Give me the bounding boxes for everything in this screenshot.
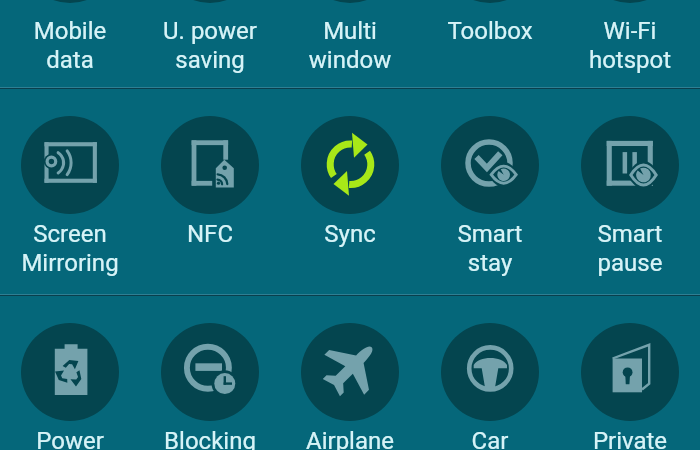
staticText: Power saving bbox=[0, 427, 140, 450]
button[interactable]: Blocking mode bbox=[140, 296, 280, 450]
button[interactable]: Car mode bbox=[420, 296, 560, 450]
staticText: NFC bbox=[140, 220, 280, 248]
button[interactable]: Screen Mirroring bbox=[0, 89, 140, 296]
staticText: Wi-Fi hotspot bbox=[560, 17, 700, 74]
staticText: Car mode bbox=[420, 427, 560, 450]
button[interactable]: Wi-Fi hotspot bbox=[560, 0, 700, 89]
button[interactable]: Private mode bbox=[560, 296, 700, 450]
staticText: Screen Mirroring bbox=[0, 220, 140, 277]
button[interactable]: Toolbox bbox=[420, 0, 560, 89]
button[interactable]: Airplane mode bbox=[280, 296, 420, 450]
button[interactable]: Smart pause bbox=[560, 89, 700, 296]
staticText: Smart stay bbox=[420, 220, 560, 277]
button[interactable]: Sync bbox=[280, 89, 420, 296]
button[interactable]: U. power saving bbox=[140, 0, 280, 89]
button[interactable]: NFC bbox=[140, 89, 280, 296]
button[interactable]: Mobile data bbox=[0, 0, 140, 89]
button[interactable]: Multi window bbox=[280, 0, 420, 89]
button[interactable]: Power saving bbox=[0, 296, 140, 450]
staticText: Blocking mode bbox=[140, 427, 280, 450]
staticText: U. power saving bbox=[140, 17, 280, 74]
staticText: Smart pause bbox=[560, 220, 700, 277]
staticText: Multi window bbox=[280, 17, 420, 74]
staticText: Private mode bbox=[560, 427, 700, 450]
staticText: Toolbox bbox=[420, 17, 560, 45]
button[interactable]: Smart stay bbox=[420, 89, 560, 296]
staticText: Mobile data bbox=[0, 17, 140, 74]
staticText: Airplane mode bbox=[280, 427, 420, 450]
staticText: Sync bbox=[280, 220, 420, 248]
